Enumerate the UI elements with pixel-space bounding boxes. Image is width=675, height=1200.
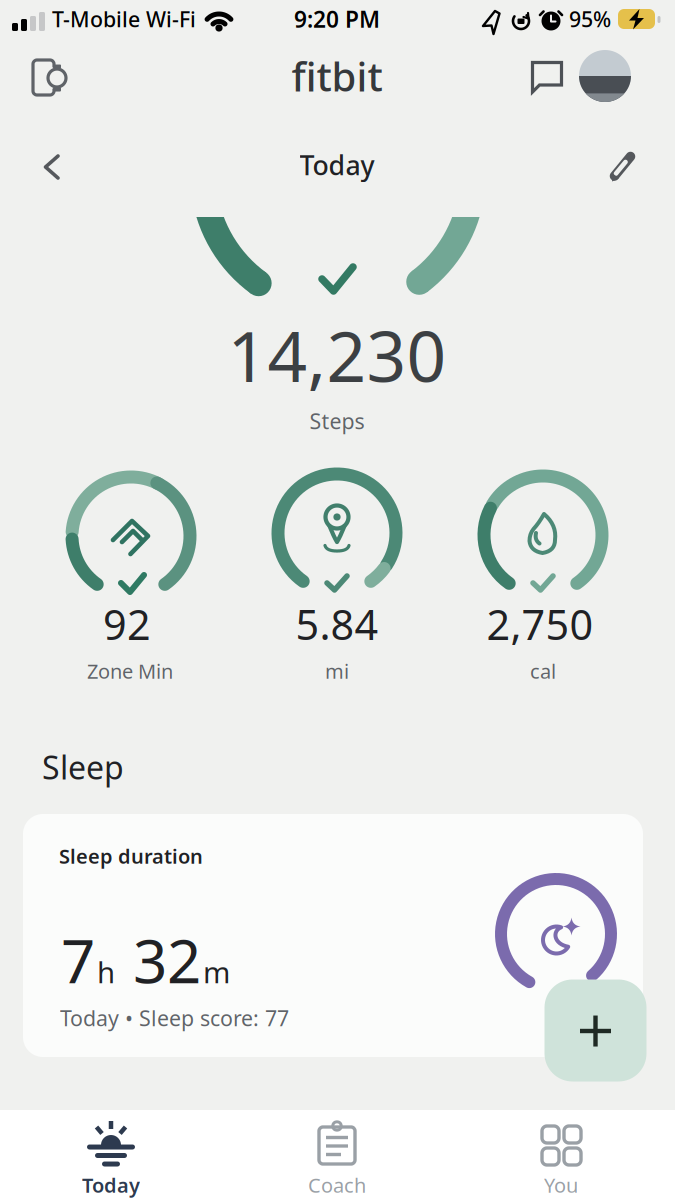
staticText: Coach	[308, 1172, 366, 1198]
staticText: m	[203, 952, 230, 991]
staticText: h	[97, 952, 115, 991]
button[interactable]: You	[486, 1110, 636, 1200]
staticText: 9:20 PM	[294, 4, 380, 34]
staticText: Zone Min	[87, 658, 173, 684]
button[interactable]: Coach	[262, 1110, 412, 1200]
staticText: fitbit	[291, 49, 382, 102]
button[interactable]: Messages	[523, 52, 569, 98]
button[interactable]: Profile	[578, 49, 632, 103]
staticText: mi	[325, 658, 349, 684]
staticText: 2,750	[486, 597, 593, 651]
staticText: 14,230	[227, 309, 446, 401]
button[interactable]: Sleep duration 7h 32m, Sleep score 77	[23, 814, 643, 1057]
staticText: You	[544, 1172, 578, 1198]
staticText: T-Mobile Wi-Fi	[52, 5, 196, 33]
staticText: Sleep	[42, 746, 124, 788]
staticText: Today	[82, 1172, 140, 1198]
button[interactable]: Scan devices	[22, 50, 76, 104]
button[interactable]: Today	[36, 1110, 186, 1200]
staticText: Today • Sleep score: 77	[60, 1004, 289, 1032]
staticText: Sleep duration	[59, 843, 203, 869]
staticText: Steps	[309, 407, 364, 435]
staticText: 32	[117, 920, 201, 1000]
button[interactable]: Add	[544, 979, 646, 1081]
staticText: Today	[299, 147, 374, 183]
button[interactable]: Edit	[602, 145, 646, 189]
staticText: 92	[103, 597, 151, 651]
staticText: 5.84	[295, 597, 378, 651]
staticText: 95%	[569, 5, 611, 33]
staticText: 7	[61, 920, 95, 1000]
staticText: cal	[530, 658, 556, 684]
button[interactable]: Back	[29, 145, 73, 189]
